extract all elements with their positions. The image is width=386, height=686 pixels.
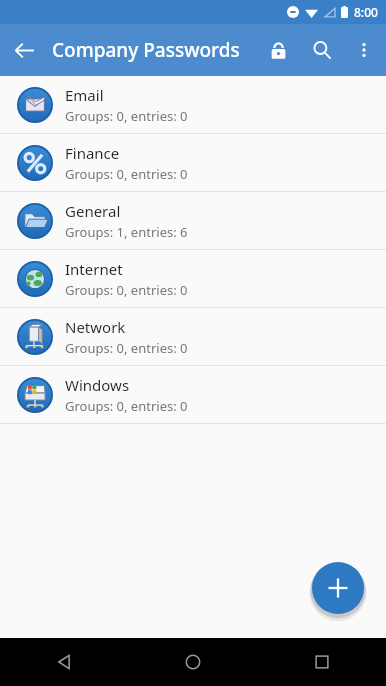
staticText: Groups: 0, entries: 0 <box>65 107 188 125</box>
button[interactable]: Windows <box>0 366 386 423</box>
staticText: Groups: 0, entries: 0 <box>65 165 188 183</box>
button[interactable]: Network <box>0 308 386 365</box>
button[interactable]: General <box>0 192 386 249</box>
staticText: 8:00 <box>354 4 378 20</box>
staticText: Company Passwords <box>52 37 256 63</box>
staticText: Email <box>65 85 104 105</box>
staticText: Groups: 0, entries: 0 <box>65 281 188 299</box>
staticText: Windows <box>65 375 130 395</box>
button[interactable]: Lock <box>256 28 300 72</box>
staticText: General <box>65 201 121 221</box>
staticText: Groups: 1, entries: 6 <box>65 223 188 241</box>
staticText: Groups: 0, entries: 0 <box>65 397 188 415</box>
staticText: Groups: 0, entries: 0 <box>65 339 188 357</box>
staticText: Finance <box>65 143 120 163</box>
button[interactable]: Back <box>0 26 48 74</box>
staticText: Network <box>65 317 126 337</box>
button[interactable]: More options <box>344 30 384 70</box>
button[interactable]: Email <box>0 76 386 133</box>
button[interactable]: Internet <box>0 250 386 307</box>
staticText: Internet <box>65 259 123 279</box>
button[interactable]: Back <box>0 638 128 686</box>
button[interactable]: Search <box>300 28 344 72</box>
button[interactable]: Recent apps <box>257 638 386 686</box>
button[interactable]: Add <box>310 560 366 616</box>
button[interactable]: Finance <box>0 134 386 191</box>
button[interactable]: Home <box>128 638 257 686</box>
